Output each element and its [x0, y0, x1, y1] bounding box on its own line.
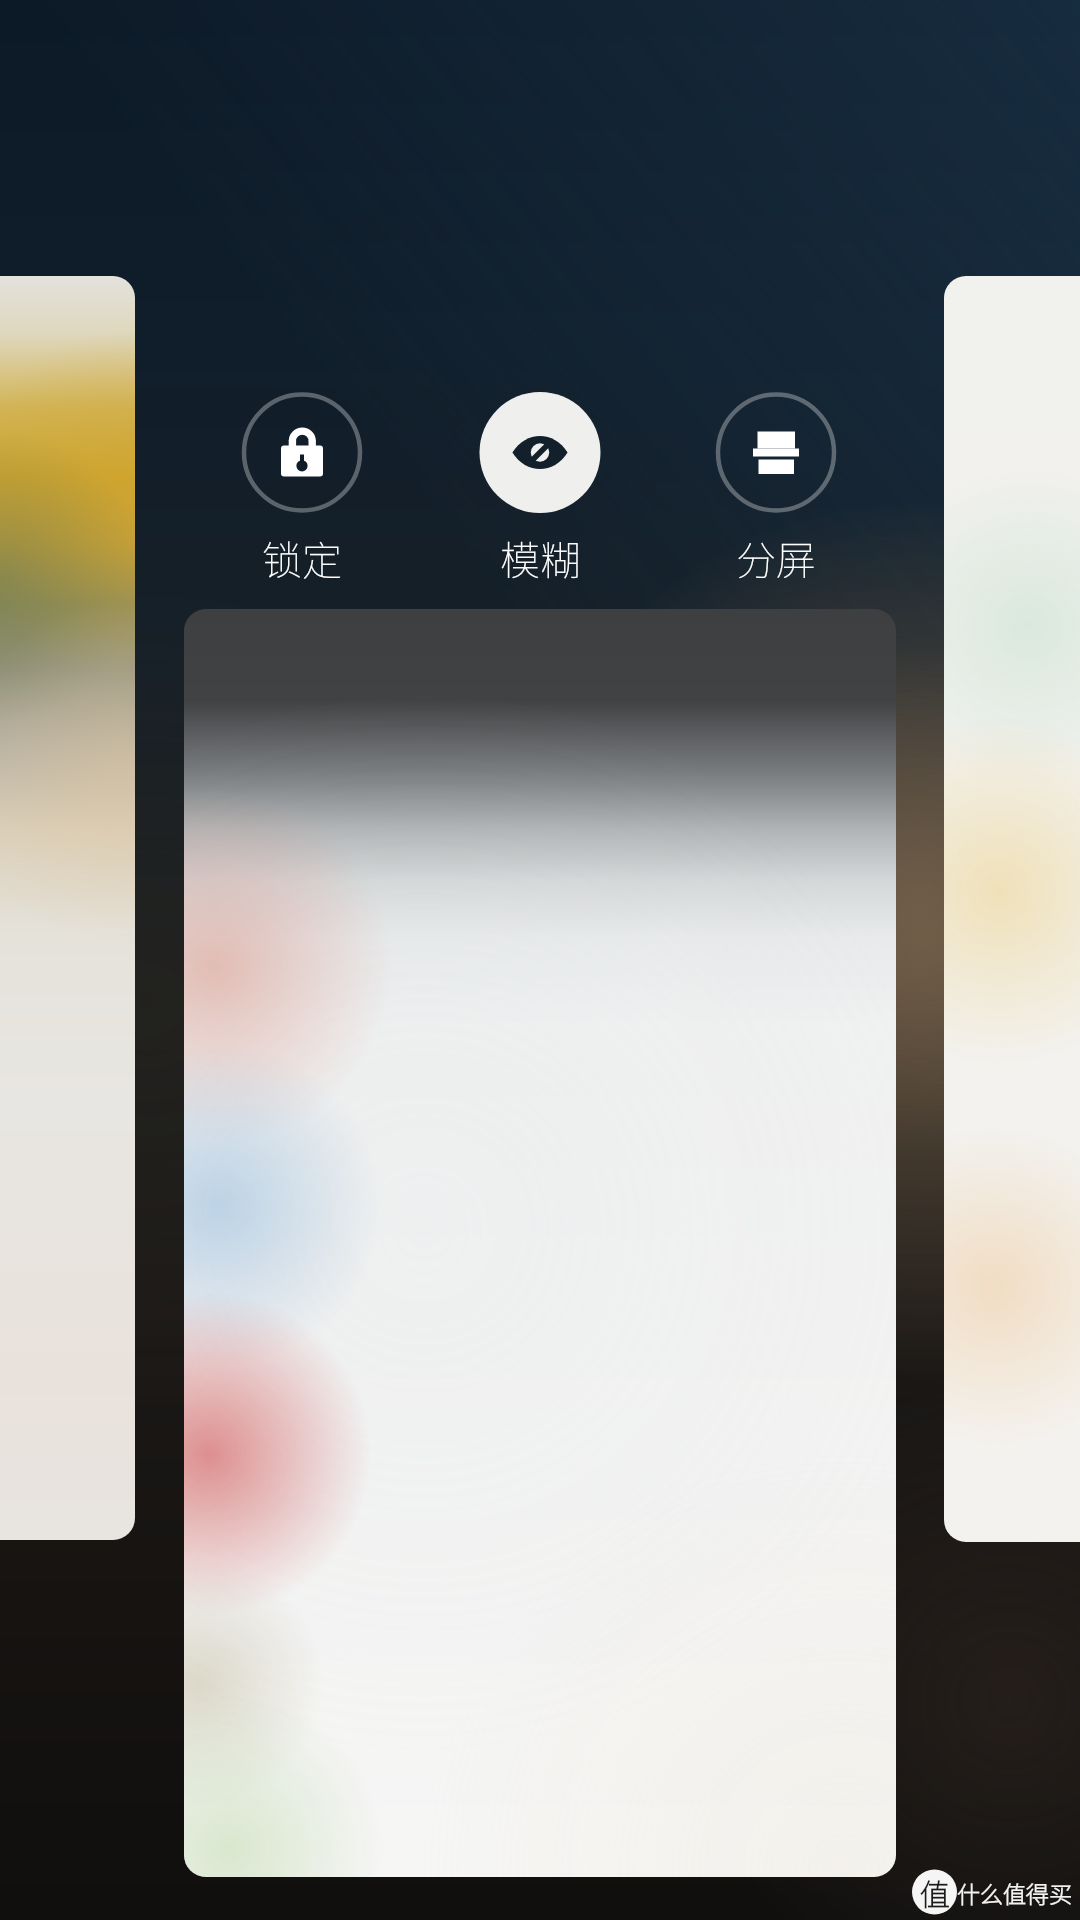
button[interactable]: 锁定: [222, 384, 382, 588]
button[interactable]: 模糊: [460, 384, 620, 588]
staticText: 模糊: [500, 529, 580, 587]
staticText: 锁定: [262, 529, 342, 587]
button[interactable]: [0, 276, 135, 1540]
button[interactable]: [944, 276, 1080, 1542]
button[interactable]: 分屏: [696, 384, 856, 588]
staticText: 值: [920, 1871, 950, 1914]
staticText: 分屏: [736, 529, 816, 587]
button[interactable]: [184, 609, 896, 1877]
staticText: 什么值得买: [957, 1876, 1072, 1909]
